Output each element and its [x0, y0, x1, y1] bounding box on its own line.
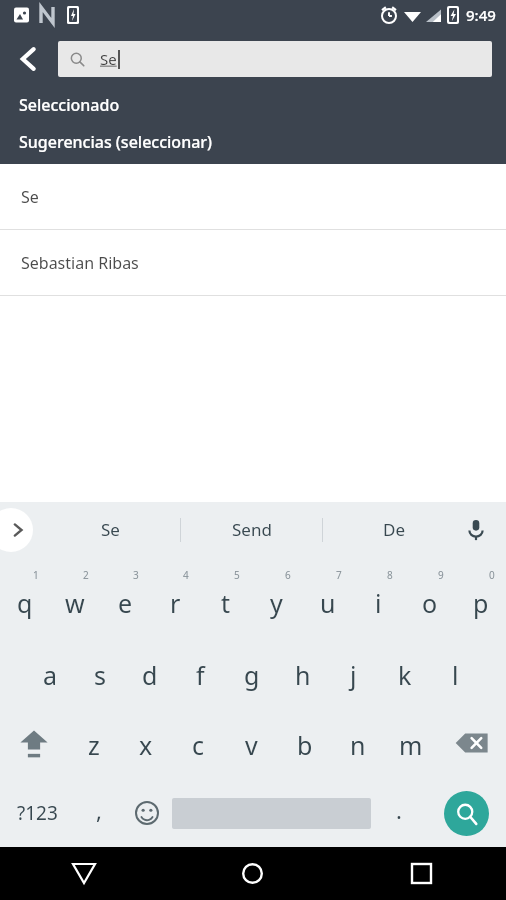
staticText: p: [473, 586, 489, 620]
staticText: x: [139, 728, 153, 762]
button[interactable]: .: [371, 779, 426, 847]
staticText: n: [350, 728, 366, 762]
staticText: Se: [21, 186, 39, 208]
button[interactable]: Home: [168, 847, 337, 900]
button[interactable]: v: [225, 707, 278, 779]
staticText: a: [43, 658, 58, 692]
button[interactable]: h: [277, 635, 328, 707]
button[interactable]: Sugerencias (seleccionar): [0, 123, 506, 161]
staticText: Sebastian Ribas: [21, 252, 139, 274]
staticText: y: [270, 586, 283, 620]
button[interactable]: ,: [75, 779, 122, 847]
staticText: b: [297, 728, 313, 762]
button[interactable]: Se: [40, 502, 180, 557]
staticText: 5: [234, 568, 240, 582]
button[interactable]: 9: [404, 563, 455, 635]
staticText: 0: [489, 568, 495, 582]
staticText: .: [396, 795, 402, 825]
staticText: 4: [183, 568, 189, 582]
staticText: j: [350, 658, 357, 692]
button[interactable]: l: [430, 635, 481, 707]
button[interactable]: Send: [181, 502, 322, 557]
staticText: v: [245, 728, 258, 762]
staticText: h: [295, 658, 311, 692]
staticText: r: [170, 586, 181, 620]
staticText: f: [196, 658, 205, 692]
button[interactable]: 7: [302, 563, 353, 635]
button[interactable]: z: [68, 707, 120, 779]
staticText: t: [221, 586, 231, 620]
button[interactable]: Seleccionado: [0, 87, 506, 123]
staticText: c: [192, 728, 205, 762]
button[interactable]: 4: [150, 563, 200, 635]
button[interactable]: Voice input: [456, 510, 496, 550]
button[interactable]: Se: [0, 164, 506, 229]
staticText: 6: [285, 568, 291, 582]
button[interactable]: m: [384, 707, 437, 779]
staticText: 7: [336, 568, 342, 582]
staticText: De: [383, 518, 405, 541]
button[interactable]: 8: [353, 563, 404, 635]
staticText: z: [88, 728, 100, 762]
button[interactable]: Back: [0, 30, 58, 87]
button[interactable]: f: [175, 635, 226, 707]
button[interactable]: Search: [426, 779, 506, 847]
button[interactable]: 2: [50, 563, 100, 635]
staticText: Seleccionado: [19, 94, 120, 116]
staticText: Sugerencias (seleccionar): [19, 131, 213, 153]
staticText: ,: [96, 795, 102, 825]
button[interactable]: De: [323, 502, 464, 557]
button[interactable]: x: [120, 707, 172, 779]
button[interactable]: j: [328, 635, 379, 707]
button[interactable]: Space: [172, 779, 371, 847]
button[interactable]: More suggestions: [0, 508, 33, 552]
staticText: w: [65, 586, 85, 620]
staticText: k: [398, 658, 412, 692]
staticText: 3: [133, 568, 139, 582]
button[interactable]: a: [25, 635, 75, 707]
staticText: 2: [83, 568, 89, 582]
button[interactable]: Se: [58, 41, 492, 77]
staticText: e: [118, 586, 133, 620]
staticText: s: [94, 658, 106, 692]
staticText: i: [375, 586, 382, 620]
button[interactable]: k: [379, 635, 430, 707]
button[interactable]: d: [125, 635, 175, 707]
staticText: Se: [100, 49, 117, 69]
button[interactable]: 0: [455, 563, 506, 635]
button[interactable]: 5: [200, 563, 251, 635]
button[interactable]: b: [278, 707, 331, 779]
button[interactable]: Shift: [0, 707, 68, 779]
staticText: l: [452, 658, 459, 692]
button[interactable]: c: [172, 707, 225, 779]
staticText: 1: [33, 568, 39, 582]
staticText: o: [422, 586, 438, 620]
staticText: 9: [438, 568, 444, 582]
staticText: g: [244, 658, 260, 692]
button[interactable]: s: [75, 635, 125, 707]
button[interactable]: 3: [100, 563, 150, 635]
button[interactable]: 1: [0, 563, 50, 635]
button[interactable]: Sebastian Ribas: [0, 230, 506, 295]
staticText: 8: [387, 568, 393, 582]
button[interactable]: n: [331, 707, 384, 779]
staticText: d: [142, 658, 158, 692]
staticText: m: [399, 728, 423, 762]
staticText: 9:49: [466, 5, 496, 25]
button[interactable]: 6: [251, 563, 302, 635]
staticText: Se: [101, 518, 120, 541]
staticText: q: [17, 586, 33, 620]
staticText: Send: [232, 518, 272, 541]
button[interactable]: Recent apps: [337, 847, 506, 900]
button[interactable]: Back: [0, 847, 168, 900]
staticText: ?123: [17, 800, 58, 826]
button[interactable]: g: [226, 635, 277, 707]
button[interactable]: Emoji: [122, 779, 172, 847]
staticText: u: [320, 586, 336, 620]
button[interactable]: Backspace: [437, 707, 506, 779]
button[interactable]: ?123: [0, 779, 75, 847]
